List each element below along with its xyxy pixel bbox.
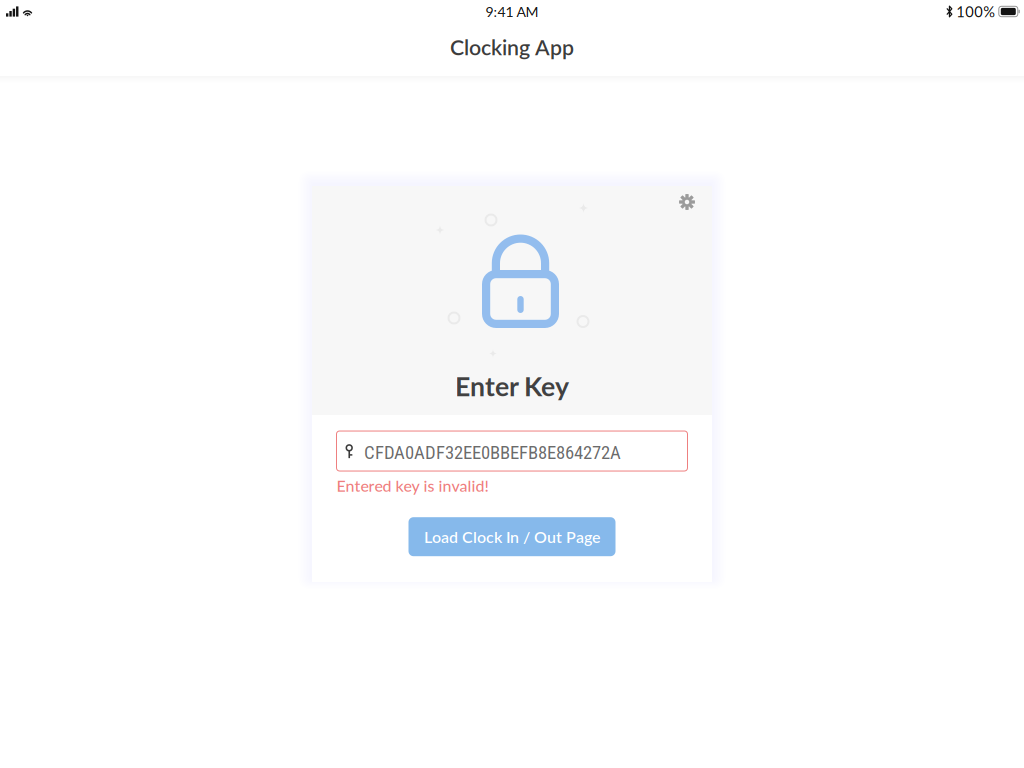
- staticText: CFDA0ADF32EE0BBEFB8E864272A: [364, 442, 621, 463]
- staticText: 9:41 AM: [485, 3, 538, 20]
- staticText: 100%: [956, 3, 995, 20]
- staticText: Load Clock In / Out Page: [424, 527, 600, 546]
- staticText: Entered key is invalid!: [336, 476, 488, 495]
- button[interactable]: Load Clock In / Out Page: [408, 517, 615, 556]
- staticText: Clocking App: [450, 34, 574, 60]
- button[interactable]: Settings: [671, 186, 703, 218]
- staticText: Enter Key: [455, 370, 569, 402]
